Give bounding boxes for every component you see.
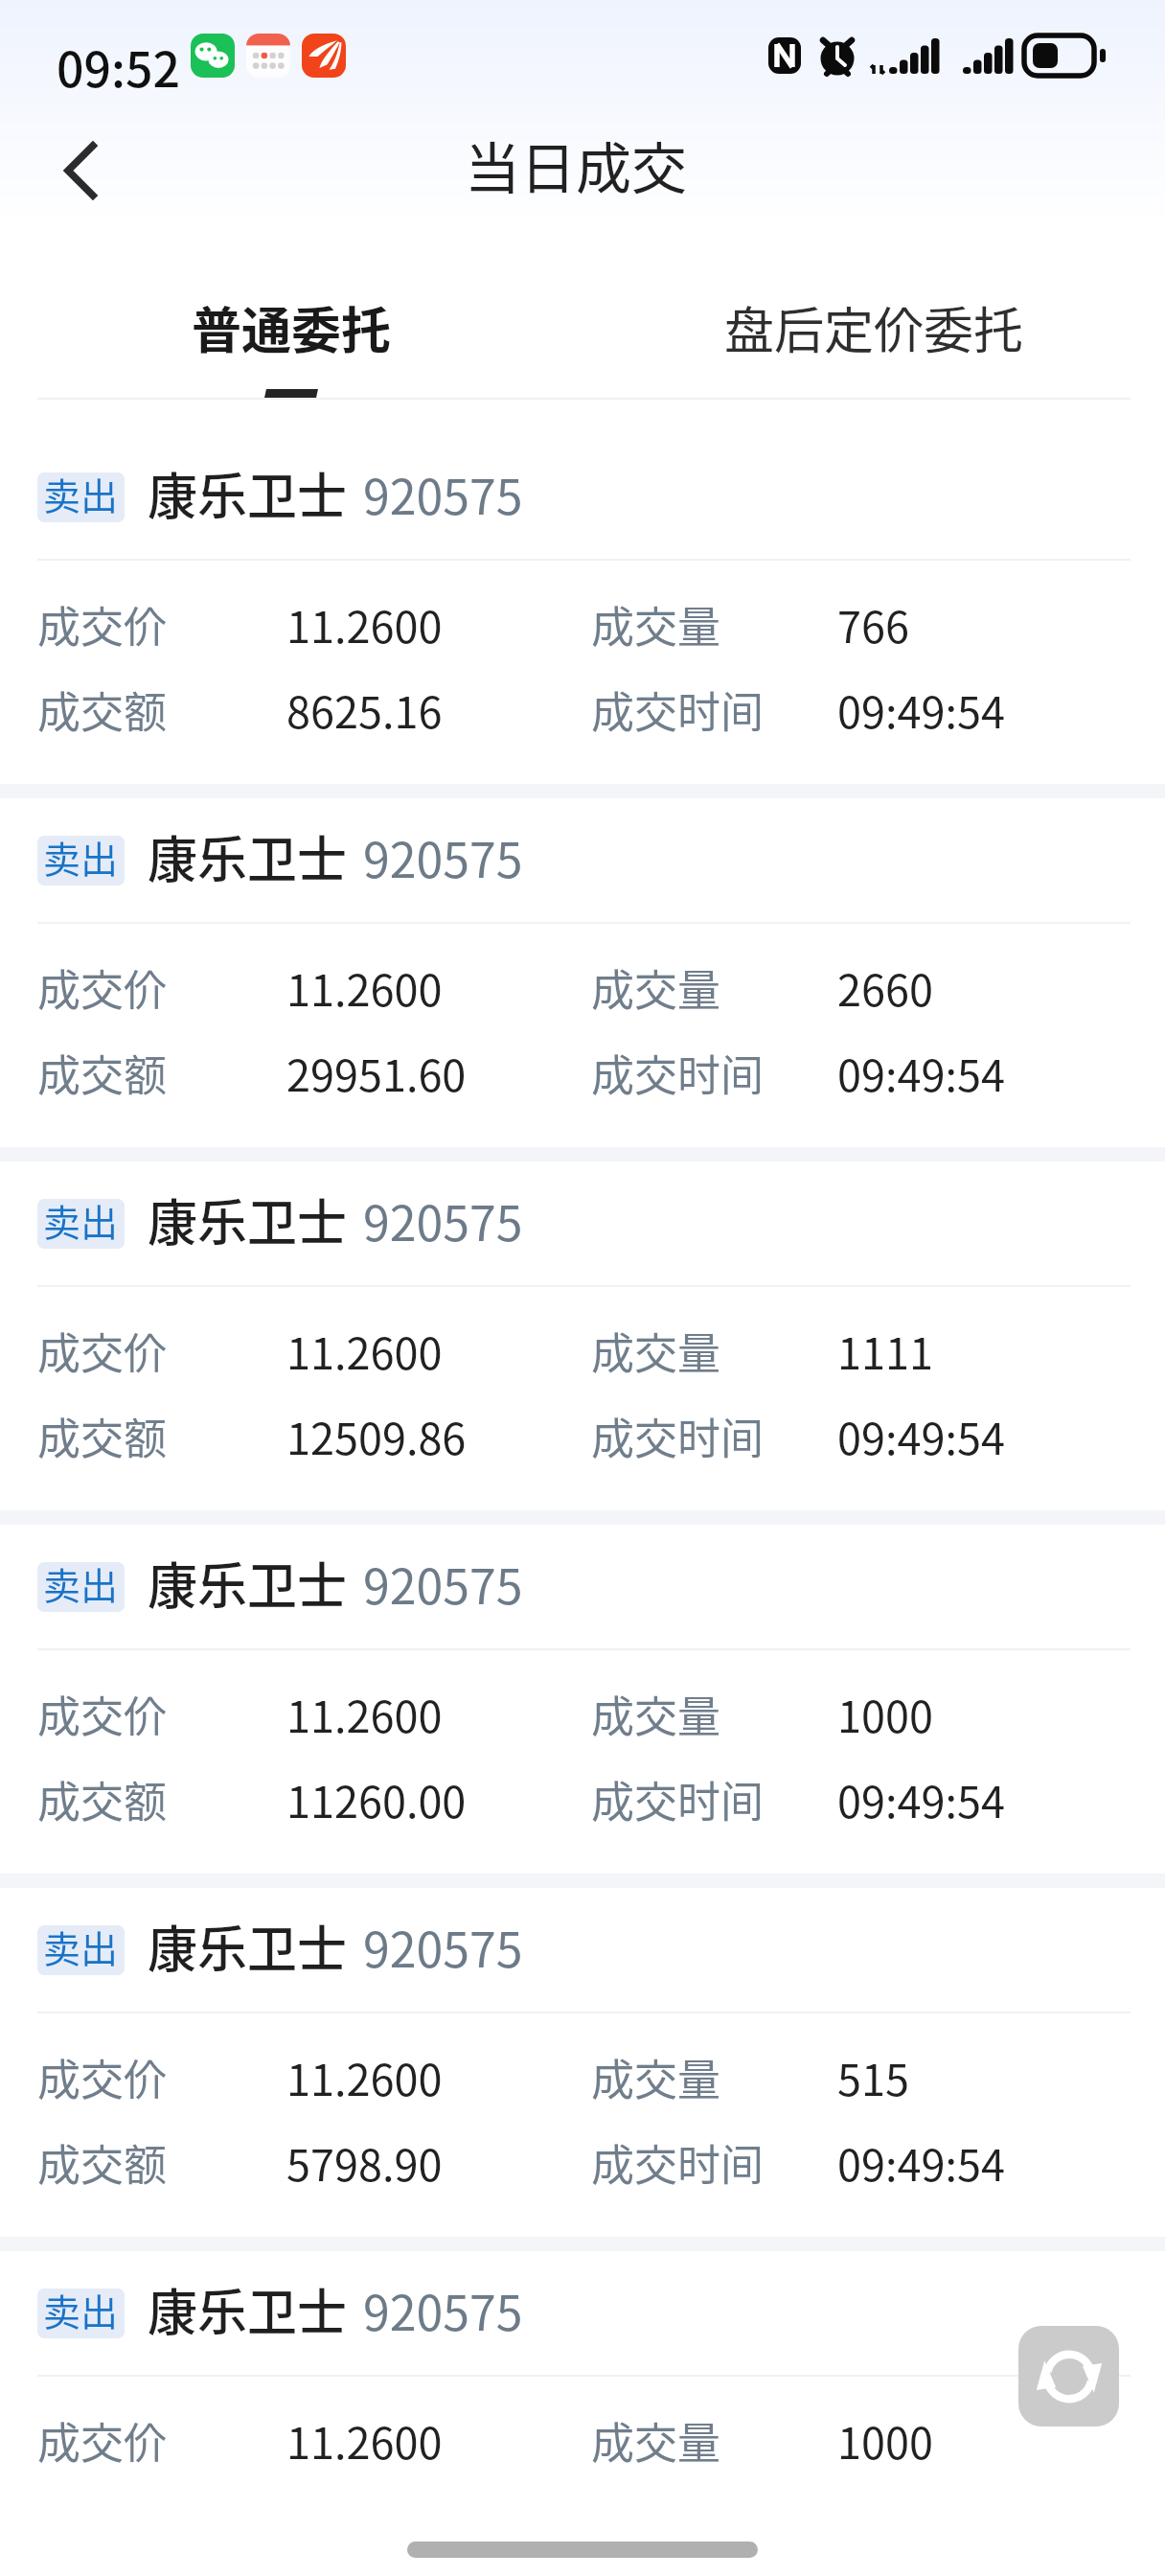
staticText: 8625.16 <box>286 678 443 741</box>
staticText: 成交量 <box>591 2046 721 2108</box>
staticText: 卖出 <box>43 836 119 880</box>
staticText: 成交量 <box>591 2409 721 2472</box>
staticText: 11.2600 <box>286 593 443 655</box>
button[interactable]: 卖出 <box>0 798 1165 1147</box>
staticText: 成交额 <box>37 1042 168 1104</box>
staticText: 成交时间 <box>591 678 765 741</box>
staticText: 成交价 <box>37 1320 168 1382</box>
staticText: 920575 <box>363 1185 523 1254</box>
staticText: 12509.86 <box>286 1405 467 1467</box>
button[interactable]: 卖出 <box>0 1161 1165 1510</box>
button[interactable]: 卖出 <box>0 2251 1165 2492</box>
staticText: 康乐卫士 <box>148 1547 348 1619</box>
staticText: 成交时间 <box>591 2131 765 2194</box>
staticText: 卖出 <box>43 472 119 517</box>
staticText: 康乐卫士 <box>148 1184 348 1255</box>
staticText: 成交时间 <box>591 1405 765 1467</box>
staticText: 1000 <box>837 2409 933 2472</box>
staticText: 盘后定价委托 <box>724 291 1024 363</box>
staticText: 2660 <box>837 956 933 1019</box>
staticText: 卖出 <box>43 2288 119 2333</box>
staticText: 康乐卫士 <box>148 820 348 892</box>
staticText: 09:49:54 <box>837 1768 1005 1830</box>
staticText: 920575 <box>363 822 523 891</box>
staticText: 766 <box>837 593 909 655</box>
staticText: 成交价 <box>37 593 168 655</box>
button[interactable]: 卖出 <box>0 1888 1165 2237</box>
staticText: 515 <box>837 2046 909 2108</box>
button[interactable]: 盘后定价委托 <box>582 216 1165 400</box>
staticText: 11260.00 <box>286 1768 467 1830</box>
staticText: 卖出 <box>43 1562 119 1606</box>
button[interactable]: 卖出 <box>0 435 1165 784</box>
staticText: 11.2600 <box>286 2409 443 2472</box>
staticText: 09:49:54 <box>837 1405 1005 1467</box>
staticText: 920575 <box>363 459 523 528</box>
staticText: 成交额 <box>37 2131 168 2194</box>
staticText: 5798.90 <box>286 2131 443 2194</box>
staticText: 成交量 <box>591 593 721 655</box>
staticText: 1111 <box>837 1320 933 1382</box>
staticText: 成交时间 <box>591 1768 765 1830</box>
staticText: 卖出 <box>43 1199 119 1243</box>
staticText: 11.2600 <box>286 1320 443 1382</box>
staticText: 成交量 <box>591 956 721 1019</box>
staticText: 成交价 <box>37 1683 168 1745</box>
staticText: 11.2600 <box>286 2046 443 2108</box>
staticText: 920575 <box>363 2275 523 2344</box>
button[interactable]: 普通委托 <box>0 216 582 400</box>
staticText: 成交额 <box>37 1405 168 1467</box>
staticText: 成交价 <box>37 2409 168 2472</box>
staticText: 成交额 <box>37 1768 168 1830</box>
staticText: 11.2600 <box>286 1683 443 1745</box>
staticText: 成交价 <box>37 2046 168 2108</box>
staticText: 成交时间 <box>591 1042 765 1104</box>
staticText: 920575 <box>363 1912 523 1981</box>
staticText: 29951.60 <box>286 1042 467 1104</box>
staticText: 成交量 <box>591 1683 721 1745</box>
staticText: 成交额 <box>37 678 168 741</box>
staticText: 普通委托 <box>192 291 392 363</box>
staticText: 成交量 <box>591 1320 721 1382</box>
button[interactable]: Refresh <box>1018 2326 1119 2426</box>
staticText: 09:49:54 <box>837 2131 1005 2194</box>
staticText: 09:49:54 <box>837 1042 1005 1104</box>
staticText: 09:49:54 <box>837 678 1005 741</box>
staticText: 920575 <box>363 1549 523 1618</box>
staticText: 卖出 <box>43 1925 119 1969</box>
staticText: 康乐卫士 <box>148 457 348 529</box>
button[interactable]: 卖出 <box>0 1525 1165 1874</box>
staticText: 09:52 <box>57 32 180 101</box>
staticText: 成交价 <box>37 956 168 1019</box>
staticText: 当日成交 <box>465 125 688 205</box>
staticText: 11.2600 <box>286 956 443 1019</box>
staticText: 1000 <box>837 1683 933 1745</box>
button[interactable]: Back <box>28 118 133 223</box>
staticText: 康乐卫士 <box>148 1910 348 1982</box>
staticText: 康乐卫士 <box>148 2273 348 2345</box>
